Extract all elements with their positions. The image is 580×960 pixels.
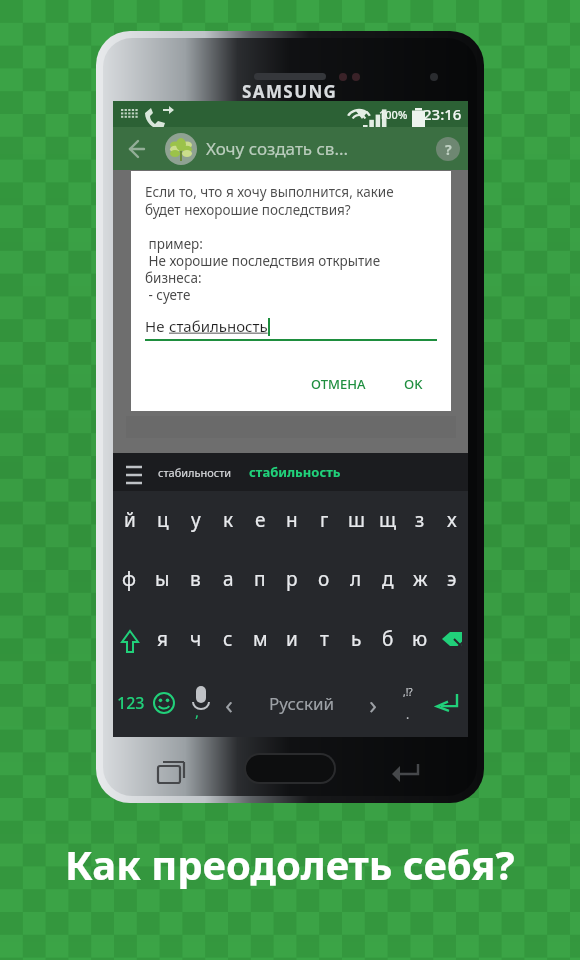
button[interactable]: я bbox=[146, 609, 179, 669]
staticText: › bbox=[369, 686, 378, 721]
button[interactable]: Влево bbox=[213, 669, 246, 737]
staticText: б bbox=[382, 626, 394, 652]
staticText: пример: Не хорошие последствия открытие … bbox=[145, 235, 381, 304]
button[interactable]: OK bbox=[396, 371, 431, 397]
button[interactable]: 123 bbox=[113, 669, 148, 737]
staticText: Как преодолеть себя? bbox=[65, 837, 515, 891]
staticText: Хочу создать св... bbox=[206, 137, 349, 160]
staticText: я bbox=[157, 626, 168, 652]
staticText: , bbox=[195, 701, 200, 721]
button[interactable]: ОТМЕНА bbox=[303, 371, 374, 397]
button[interactable]: Recents bbox=[156, 758, 190, 782]
staticText: р bbox=[286, 566, 298, 592]
button[interactable]: н bbox=[276, 491, 308, 549]
button[interactable]: Эмодзи bbox=[148, 669, 180, 737]
button[interactable]: Вправо bbox=[357, 669, 390, 737]
button[interactable]: ы bbox=[146, 549, 179, 609]
button[interactable]: Назад bbox=[121, 134, 151, 164]
staticText: е bbox=[255, 507, 266, 533]
button[interactable]: в bbox=[179, 549, 212, 609]
button[interactable]: ш bbox=[340, 491, 372, 549]
staticText: к bbox=[223, 507, 234, 533]
button[interactable]: ь bbox=[340, 609, 372, 669]
staticText: л bbox=[350, 566, 362, 592]
staticText: и bbox=[286, 626, 298, 652]
button[interactable]: з bbox=[404, 491, 436, 549]
staticText: э bbox=[447, 566, 457, 592]
button[interactable]: х bbox=[436, 491, 468, 549]
staticText: в bbox=[190, 566, 201, 592]
button[interactable]: Помощь bbox=[436, 137, 460, 161]
button[interactable]: ч bbox=[179, 609, 212, 669]
staticText: ч bbox=[190, 626, 202, 652]
button[interactable]: Голосовой ввод bbox=[180, 669, 213, 737]
button[interactable]: р bbox=[276, 549, 308, 609]
button[interactable]: б bbox=[372, 609, 404, 669]
button[interactable]: ж bbox=[404, 549, 436, 609]
button[interactable]: ф bbox=[113, 549, 146, 609]
staticText: SAMSUNG bbox=[242, 80, 338, 103]
button[interactable]: к bbox=[212, 491, 244, 549]
button[interactable]: е bbox=[244, 491, 276, 549]
staticText: OK bbox=[404, 375, 423, 393]
staticText: т bbox=[320, 626, 329, 652]
staticText: з bbox=[415, 507, 425, 533]
button[interactable]: стабильность bbox=[249, 463, 341, 481]
staticText: 23:16 bbox=[423, 104, 462, 124]
button[interactable]: ,!? bbox=[390, 669, 426, 737]
staticText: х bbox=[447, 507, 457, 533]
staticText: м bbox=[253, 626, 268, 652]
button[interactable]: ц bbox=[146, 491, 179, 549]
staticText: с bbox=[223, 626, 233, 652]
staticText: ‹ bbox=[225, 686, 234, 721]
button[interactable]: Меню bbox=[122, 460, 146, 484]
staticText: н bbox=[286, 507, 298, 533]
button[interactable]: Home bbox=[244, 753, 336, 784]
staticText: а bbox=[223, 566, 234, 592]
button[interactable]: т bbox=[308, 609, 340, 669]
staticText: 100% bbox=[379, 107, 408, 122]
button[interactable]: Shift bbox=[113, 609, 146, 669]
button[interactable]: Русский bbox=[246, 669, 357, 737]
staticText: й bbox=[124, 507, 136, 533]
staticText: Не bbox=[145, 316, 169, 336]
staticText: Русский bbox=[269, 692, 335, 715]
staticText: ж bbox=[413, 566, 428, 592]
staticText: г bbox=[320, 507, 329, 533]
staticText: д bbox=[382, 566, 394, 592]
button[interactable]: д bbox=[372, 549, 404, 609]
staticText: стабильность bbox=[169, 316, 268, 336]
staticText: ц bbox=[157, 507, 169, 533]
button[interactable]: г bbox=[308, 491, 340, 549]
button[interactable]: л bbox=[340, 549, 372, 609]
staticText: 123 bbox=[117, 692, 145, 714]
button[interactable]: Ввод bbox=[426, 669, 468, 737]
button[interactable]: о bbox=[308, 549, 340, 609]
button[interactable]: й bbox=[113, 491, 146, 549]
staticText: ф bbox=[122, 566, 137, 592]
staticText: щ bbox=[379, 507, 397, 533]
staticText: у bbox=[191, 507, 201, 533]
button[interactable]: с bbox=[212, 609, 244, 669]
staticText: ? bbox=[445, 140, 452, 159]
button[interactable]: щ bbox=[372, 491, 404, 549]
staticText: Если то, что я хочу выполнится, какие бу… bbox=[145, 183, 394, 219]
staticText: п bbox=[254, 566, 266, 592]
button[interactable]: м bbox=[244, 609, 276, 669]
button[interactable]: у bbox=[179, 491, 212, 549]
staticText: . bbox=[406, 706, 410, 722]
button[interactable]: стабильности bbox=[158, 465, 232, 480]
staticText: о bbox=[318, 566, 330, 592]
button[interactable]: Back bbox=[388, 758, 422, 782]
button[interactable]: и bbox=[276, 609, 308, 669]
staticText: ,!? bbox=[403, 685, 413, 699]
staticText: ь bbox=[351, 626, 362, 652]
button[interactable]: а bbox=[212, 549, 244, 609]
button[interactable]: э bbox=[436, 549, 468, 609]
staticText: ю bbox=[412, 626, 428, 652]
button[interactable]: Удалить bbox=[436, 609, 468, 669]
button[interactable]: п bbox=[244, 549, 276, 609]
button[interactable]: ю bbox=[404, 609, 436, 669]
staticText: ы bbox=[155, 566, 170, 592]
staticText: ш bbox=[348, 507, 365, 533]
